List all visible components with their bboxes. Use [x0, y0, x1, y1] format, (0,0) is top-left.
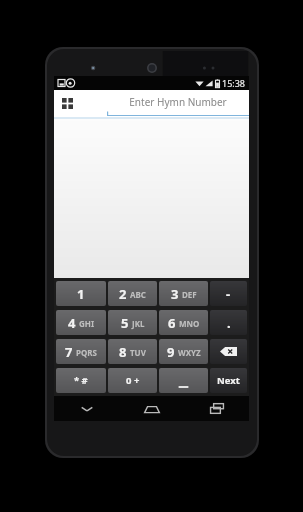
staticText: 9: [167, 343, 175, 361]
button[interactable]: -: [210, 281, 247, 306]
staticText: 2: [119, 285, 127, 303]
staticText: MNO: [179, 318, 200, 329]
staticText: Enter Hymn Number: [107, 95, 249, 109]
button[interactable]: 1: [56, 281, 106, 306]
button[interactable]: 6: [159, 310, 208, 335]
staticText: 1: [77, 285, 85, 303]
staticText: 8: [119, 343, 127, 361]
button[interactable]: Home: [119, 396, 184, 421]
staticText: PQRS: [76, 347, 97, 358]
staticText: DEF: [182, 289, 197, 300]
button[interactable]: 3: [159, 281, 208, 306]
staticText: 15:38: [222, 77, 246, 89]
button[interactable]: 2: [108, 281, 157, 306]
staticText: 7: [65, 343, 73, 361]
staticText: GHI: [79, 318, 95, 329]
button[interactable]: 4: [56, 310, 106, 335]
button[interactable]: Next: [210, 368, 247, 393]
staticText: -: [226, 285, 231, 303]
button[interactable]: Backspace: [210, 339, 247, 364]
button[interactable]: Hide keyboard: [54, 396, 119, 421]
staticText: * #: [74, 374, 88, 387]
button[interactable]: 0 +: [108, 368, 157, 393]
button[interactable]: .: [210, 310, 247, 335]
button[interactable]: * #: [56, 368, 106, 393]
staticText: ABC: [130, 289, 146, 300]
button[interactable]: Recent apps: [184, 396, 249, 421]
button[interactable]: 7: [56, 339, 106, 364]
button[interactable]: 5: [108, 310, 157, 335]
staticText: 3: [171, 285, 179, 303]
staticText: WXYZ: [178, 347, 201, 358]
button[interactable]: Enter Hymn Number: [107, 90, 249, 117]
staticText: TUV: [130, 347, 146, 358]
staticText: 0 +: [126, 374, 140, 387]
button[interactable]: Space: [159, 368, 208, 393]
button[interactable]: 8: [108, 339, 157, 364]
staticText: .: [227, 314, 231, 332]
staticText: 6: [168, 314, 176, 332]
button[interactable]: Hymn index: [56, 90, 78, 117]
staticText: 5: [121, 314, 129, 332]
button[interactable]: 9: [159, 339, 208, 364]
staticText: JKL: [132, 318, 145, 329]
staticText: Next: [217, 374, 240, 387]
staticText: 4: [68, 314, 76, 332]
